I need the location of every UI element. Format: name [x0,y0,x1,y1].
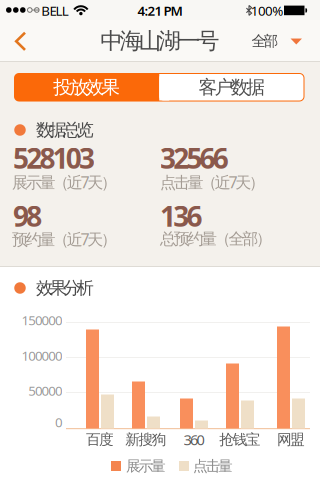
staticText: 100000 [21,347,63,364]
staticText: 全部 [251,32,278,50]
staticText: 0 [55,413,63,431]
staticText: 网盟 [277,430,305,448]
button[interactable]: 客户数据 [159,73,304,101]
staticText: 点击量（近7天） [160,171,265,193]
staticText: 528103 [13,139,95,177]
staticText: 展示量 [126,457,166,475]
button[interactable]: 全部 [248,20,306,61]
staticText: 点击量 [193,457,233,475]
staticText: 效果分析 [36,277,93,299]
staticText: BELL [41,2,69,19]
staticText: 136 [160,197,202,235]
staticText: 总预约量（全部） [160,229,272,249]
staticText: 360 [183,430,204,449]
staticText: 数据总览 [36,119,93,141]
staticText: 32566 [160,139,229,177]
staticText: 100% [251,2,283,19]
staticText: 中海山湖一号 [100,27,220,55]
button[interactable] [4,21,36,62]
staticText: 4:21 PM [137,2,182,19]
staticText: 投放效果 [53,76,120,99]
staticText: 50000 [28,382,63,399]
staticText: 百度 [86,430,114,448]
staticText: 新搜狗 [125,430,167,448]
staticText: 预约量（近7天） [12,228,117,250]
staticText: 客户数据 [198,76,265,99]
staticText: 展示量（近7天） [12,171,117,193]
staticText: 98 [13,197,42,235]
button[interactable]: 投放效果 [14,73,159,101]
staticText: 抢钱宝 [219,430,261,448]
staticText: 150000 [21,311,63,329]
